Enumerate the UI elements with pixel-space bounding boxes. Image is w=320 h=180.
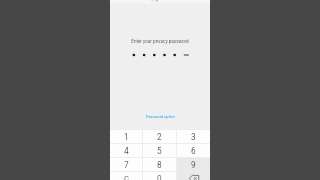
staticText: C	[124, 174, 129, 180]
button[interactable]: 6	[177, 144, 210, 157]
staticText: 3	[191, 132, 196, 142]
staticText: 2	[157, 132, 162, 142]
button[interactable]: 1	[110, 130, 142, 143]
staticText: 5	[157, 146, 162, 156]
button[interactable]: C	[110, 172, 142, 180]
staticText: 6	[191, 146, 196, 156]
staticText: 7	[124, 160, 129, 170]
staticText: 0	[157, 174, 162, 180]
staticText: Password option	[146, 114, 175, 119]
button[interactable]: 5	[143, 144, 176, 157]
button[interactable]: 2	[143, 130, 176, 143]
button[interactable]: 7	[110, 158, 142, 171]
staticText: 8	[157, 160, 162, 170]
staticText: 1	[124, 132, 129, 142]
button[interactable]: Password option	[144, 113, 177, 120]
button[interactable]: 0	[143, 172, 176, 180]
button[interactable]: 4	[110, 144, 142, 157]
button[interactable]: 9	[177, 158, 210, 171]
staticText: 9	[191, 160, 196, 170]
button[interactable]: Delete	[177, 172, 210, 180]
button[interactable]: 3	[177, 130, 210, 143]
staticText: 4	[124, 146, 129, 156]
staticText: Enter your privacy password	[131, 39, 189, 44]
button[interactable]: 8	[143, 158, 176, 171]
